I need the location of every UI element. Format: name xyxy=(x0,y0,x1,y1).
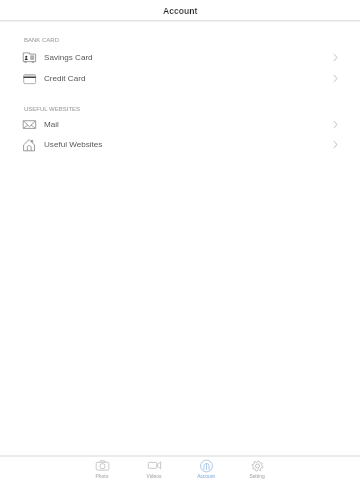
staticText: Credit Card xyxy=(44,74,86,83)
button[interactable]: Savings Card xyxy=(0,47,360,68)
staticText: BANK CARD xyxy=(24,37,60,44)
staticText: Savings Card xyxy=(44,53,93,62)
button[interactable]: Mail xyxy=(0,114,360,135)
staticText: Account xyxy=(182,474,230,479)
staticText: Mail xyxy=(44,120,59,129)
button[interactable]: Videos xyxy=(130,457,178,480)
staticText: USEFUL WEBSITES xyxy=(24,106,81,113)
staticText: Photo xyxy=(78,474,126,479)
button[interactable]: Setting xyxy=(233,457,281,480)
button[interactable]: Useful Websites xyxy=(0,134,360,155)
button[interactable]: Photo xyxy=(78,457,126,480)
staticText: Videos xyxy=(130,474,178,479)
staticText: Useful Websites xyxy=(44,140,103,149)
staticText: Account xyxy=(163,6,198,16)
button[interactable]: Credit Card xyxy=(0,68,360,89)
button[interactable]: Account xyxy=(182,457,230,480)
staticText: Setting xyxy=(233,474,281,479)
